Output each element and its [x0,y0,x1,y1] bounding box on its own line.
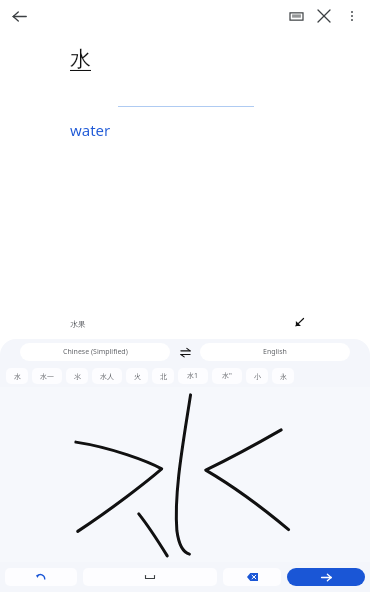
button[interactable]: Space [83,568,217,586]
staticText: 小 [254,372,261,381]
staticText: Chinese (Simplified) [63,347,128,357]
button[interactable]: Enter [287,568,365,586]
button[interactable] [0,387,370,562]
button[interactable]: Swap languages [176,343,194,361]
staticText: 水果 [70,319,86,329]
staticText: 水人 [100,372,114,381]
staticText: 火 [134,372,141,381]
staticText: water [70,120,111,140]
staticText: 水 [14,372,21,381]
button[interactable]: 永 [272,368,294,384]
button[interactable]: Backspace [223,568,281,586]
button[interactable]: 水1 [178,368,208,384]
staticText: 水 [70,46,91,72]
staticText: 水1 [187,371,199,381]
staticText: English [263,347,287,357]
button[interactable]: Undo [5,568,77,586]
button[interactable]: English [200,343,350,361]
button[interactable]: 北 [152,368,174,384]
button[interactable]: 火 [126,368,148,384]
button[interactable]: More options [338,2,366,30]
button[interactable]: 水" [212,368,242,384]
button[interactable]: 水人 [92,368,122,384]
button[interactable]: Close [310,2,338,30]
button[interactable]: 水 [6,368,28,384]
button[interactable]: Resize [290,313,308,331]
button[interactable]: 氺 [66,368,88,384]
staticText: 永 [280,372,287,381]
button[interactable]: Chinese (Simplified) [20,343,170,361]
staticText: 北 [160,372,167,381]
button[interactable]: Back [6,3,32,29]
button[interactable]: Keyboard [282,2,310,30]
button[interactable]: 水果 [70,319,86,329]
staticText: 水" [222,371,232,381]
button[interactable]: 小 [246,368,268,384]
staticText: 水一 [40,372,54,381]
button[interactable]: 水一 [32,368,62,384]
staticText: 氺 [74,372,81,381]
